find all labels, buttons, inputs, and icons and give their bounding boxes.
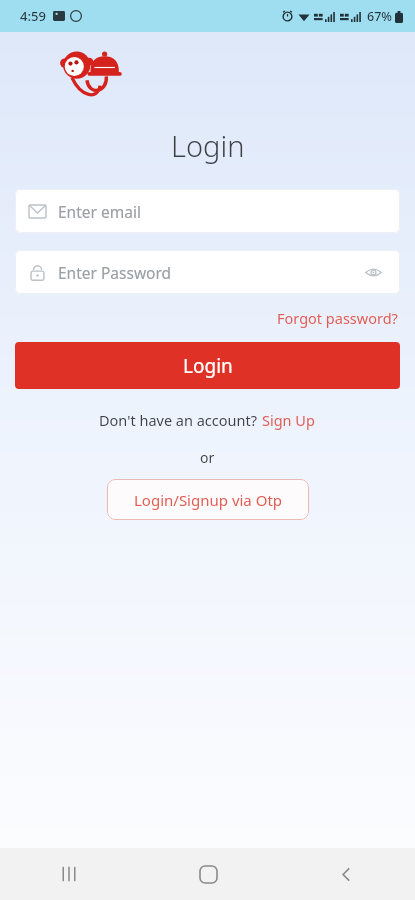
staticText: 4:59 [20, 7, 46, 25]
staticText: Enter Password [58, 262, 360, 283]
staticText: Don't have an account? [99, 410, 261, 430]
button[interactable]: Back [318, 848, 374, 900]
button[interactable]: Recent apps [41, 848, 97, 900]
button[interactable]: Login [15, 342, 400, 389]
staticText: or [200, 448, 215, 467]
button[interactable]: Home [180, 848, 236, 900]
staticText: Login/Signup via Otp [134, 490, 283, 510]
button[interactable]: Show password [360, 259, 386, 285]
staticText: Enter email [58, 201, 386, 222]
button[interactable]: Forgot password? [275, 306, 400, 330]
staticText: Forgot password? [277, 308, 398, 328]
staticText: 67% [367, 8, 392, 25]
staticText: Sign Up [262, 410, 315, 430]
button[interactable]: Enter email [15, 189, 400, 233]
button[interactable]: Enter Password [15, 250, 400, 294]
staticText: Login [183, 353, 233, 379]
staticText: Login [171, 126, 245, 165]
button[interactable]: Login/Signup via Otp [107, 479, 309, 520]
button[interactable]: Sign Up [261, 408, 316, 432]
